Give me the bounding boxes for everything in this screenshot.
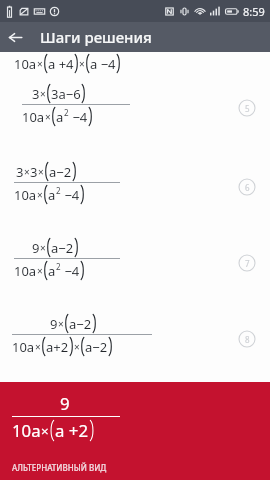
staticText: × [35, 340, 41, 354]
staticText: 10a [22, 108, 45, 126]
staticText: 6 [245, 182, 250, 193]
button[interactable]: Шаг 5 [238, 99, 256, 117]
staticText: −4 [69, 108, 88, 126]
staticText: a +2 [55, 419, 89, 442]
staticText: × [58, 317, 64, 331]
staticText: 5 [245, 103, 250, 114]
button[interactable]: Шаг 7 [238, 254, 256, 272]
staticText: 8:59 [243, 4, 265, 19]
staticText: × [79, 57, 85, 71]
staticText: −4 [61, 186, 80, 204]
staticText: × [41, 422, 49, 440]
staticText: 3a−6 [51, 85, 81, 103]
staticText: × [74, 340, 80, 354]
staticText: 10a [12, 338, 35, 356]
staticText: 8 [245, 334, 250, 345]
staticText: a +4 [48, 55, 74, 73]
staticText: 9 [50, 315, 58, 333]
staticText: × [37, 188, 43, 202]
staticText: a [48, 186, 56, 204]
staticText: a−2 [49, 163, 72, 181]
staticText: × [24, 165, 30, 179]
staticText: 2 [56, 261, 61, 272]
staticText: 2 [64, 107, 69, 118]
staticText: × [38, 165, 44, 179]
staticText: 9 [60, 392, 70, 415]
staticText: −4 [61, 262, 80, 280]
staticText: × [37, 264, 43, 278]
button[interactable]: 9 [0, 382, 270, 480]
staticText: Шаги решения [40, 27, 152, 47]
staticText: a−2 [69, 315, 92, 333]
staticText: a −4 [90, 55, 116, 73]
staticText: 10a [14, 55, 37, 73]
staticText: × [37, 57, 43, 71]
button[interactable]: Шаг 8 [238, 330, 256, 348]
staticText: a+2 [46, 338, 69, 356]
staticText: 10a [14, 186, 37, 204]
staticText: a−2 [85, 338, 108, 356]
staticText: 10a [14, 262, 37, 280]
staticText: a−2 [51, 239, 74, 257]
staticText: 7 [245, 258, 250, 269]
staticText: a [48, 262, 56, 280]
button[interactable]: Шаг 6 [238, 178, 256, 196]
staticText: АЛЬТЕРНАТИВНЫЙ ВИД [12, 462, 107, 473]
staticText: 9 [32, 239, 40, 257]
staticText: 3 [30, 163, 38, 181]
button[interactable]: Назад [0, 22, 30, 52]
staticText: a [56, 108, 64, 126]
staticText: 2 [56, 185, 61, 196]
staticText: 3 [16, 163, 24, 181]
staticText: × [45, 110, 51, 124]
staticText: × [40, 241, 46, 255]
staticText: × [40, 87, 46, 101]
staticText: 3 [32, 85, 40, 103]
staticText: 10a [12, 419, 41, 442]
